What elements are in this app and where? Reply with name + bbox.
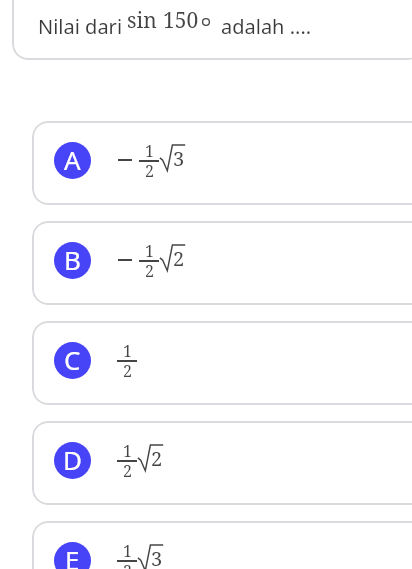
staticText: 2: [173, 245, 185, 272]
staticText: 2: [123, 560, 132, 569]
button[interactable]: Answer option D: [32, 421, 412, 505]
staticText: E: [65, 542, 80, 569]
button[interactable]: Answer option A: [32, 121, 412, 205]
staticText: 150: [163, 6, 199, 35]
staticText: adalah ....: [221, 13, 312, 40]
staticText: sin: [127, 6, 157, 35]
staticText: 1: [123, 440, 132, 462]
staticText: 2: [123, 460, 132, 482]
staticText: 3: [151, 545, 163, 569]
staticText: 2: [145, 260, 154, 282]
button[interactable]: Answer option B: [32, 221, 412, 305]
button[interactable]: Answer option C: [32, 321, 412, 405]
staticText: 3: [173, 145, 185, 172]
button[interactable]: Answer option E: [32, 521, 412, 569]
staticText: Nilai dari: [38, 13, 123, 40]
staticText: D: [63, 442, 82, 477]
staticText: 2: [151, 445, 163, 472]
staticText: C: [64, 342, 81, 377]
staticText: 2: [145, 160, 154, 182]
staticText: 1: [145, 240, 154, 262]
staticText: 2: [123, 360, 132, 382]
staticText: A: [64, 142, 81, 177]
staticText: B: [64, 242, 81, 277]
staticText: 1: [145, 140, 154, 162]
staticText: 1: [123, 540, 132, 562]
staticText: 1: [123, 340, 132, 362]
